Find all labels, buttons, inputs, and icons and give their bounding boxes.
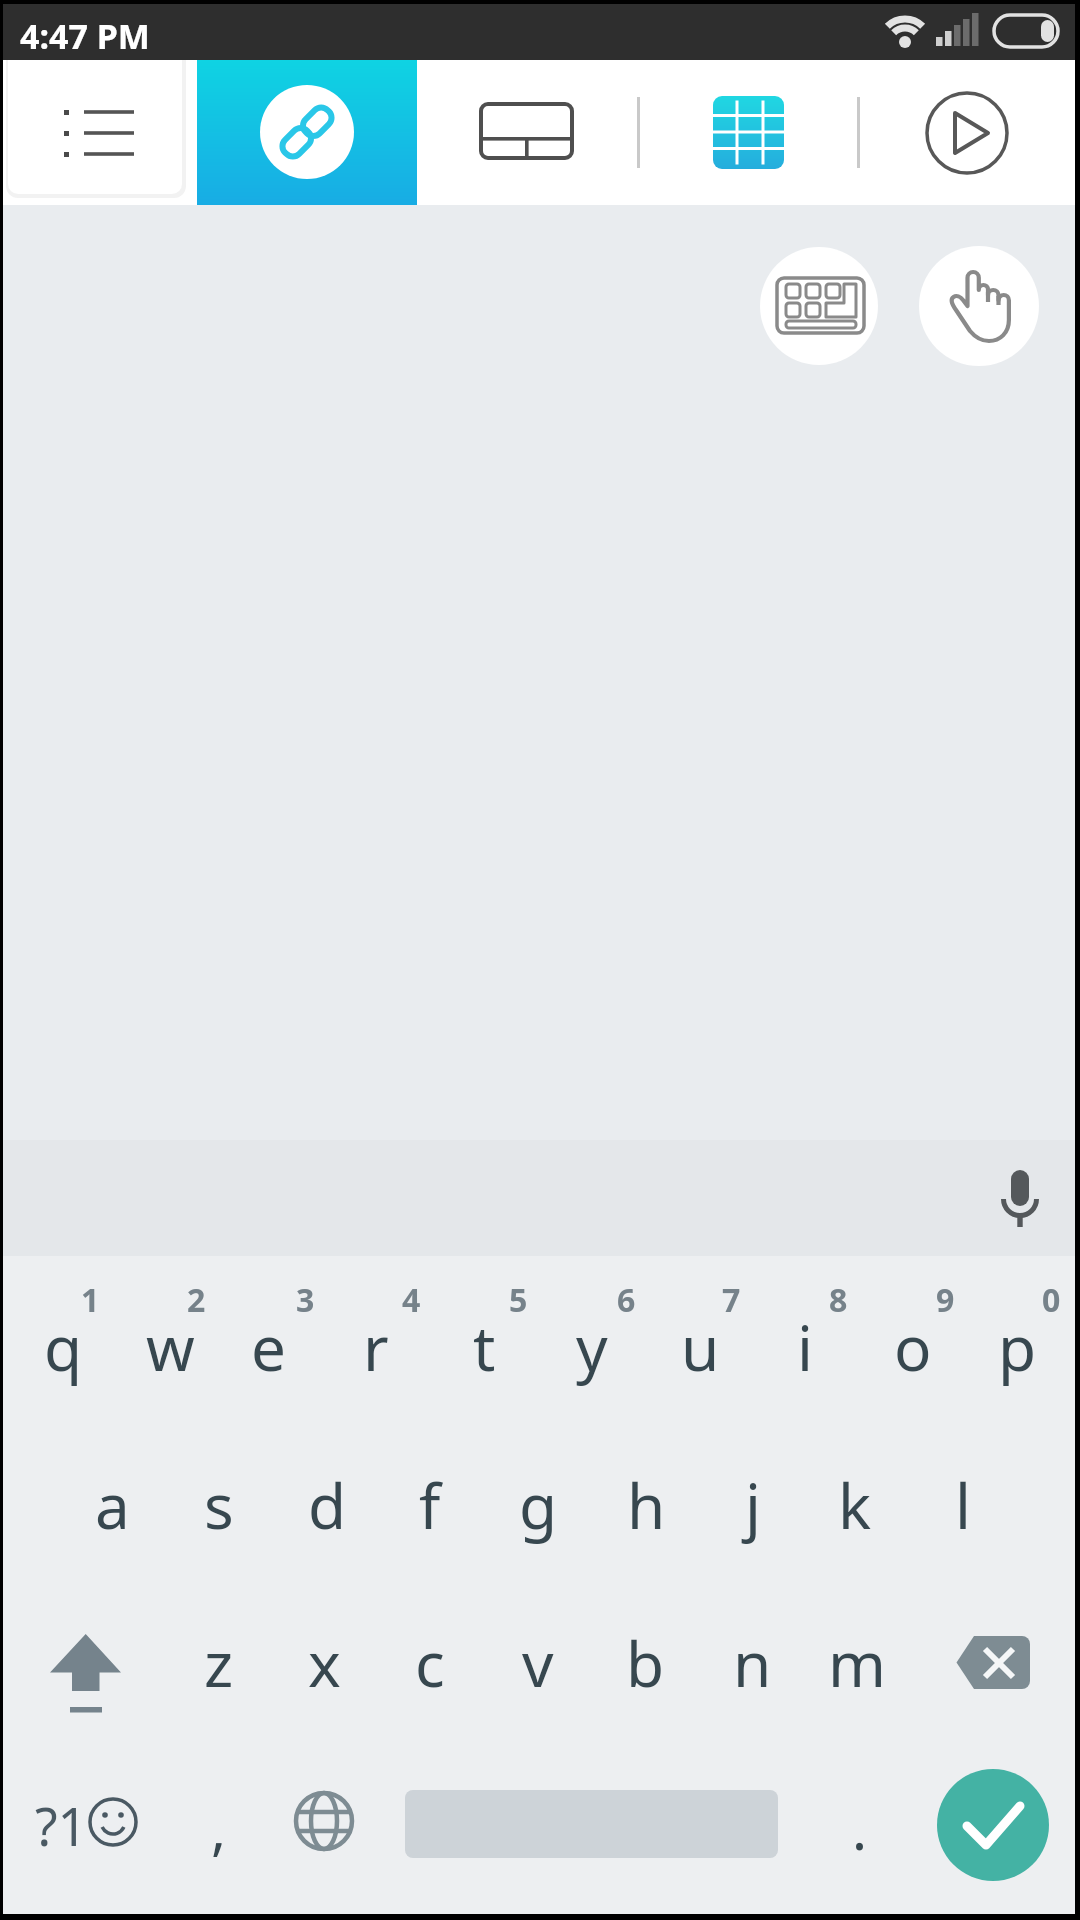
staticText: 2: [187, 1278, 206, 1322]
button[interactable]: e: [216, 1292, 320, 1402]
staticText: k: [838, 1463, 872, 1547]
button[interactable]: .: [808, 1773, 912, 1883]
staticText: 4:47 PM: [20, 13, 150, 59]
button[interactable]: ,: [167, 1773, 271, 1883]
staticText: u: [681, 1305, 720, 1389]
staticText: 4: [402, 1278, 421, 1322]
button[interactable]: j: [701, 1450, 805, 1560]
button[interactable]: [274, 1770, 374, 1880]
button[interactable]: ?1: [20, 1770, 150, 1880]
staticText: y: [576, 1305, 608, 1389]
staticText: .: [852, 1790, 868, 1866]
staticText: r: [363, 1305, 389, 1389]
button[interactable]: k: [803, 1450, 907, 1560]
staticText: 9: [936, 1278, 955, 1322]
button[interactable]: [860, 60, 1080, 205]
button[interactable]: n: [700, 1608, 804, 1718]
button[interactable]: [640, 60, 857, 205]
staticText: w: [146, 1305, 195, 1389]
button[interactable]: v: [486, 1608, 590, 1718]
button[interactable]: y: [540, 1292, 644, 1402]
staticText: s: [204, 1463, 234, 1547]
button[interactable]: [935, 1605, 1055, 1721]
button[interactable]: q: [11, 1292, 115, 1402]
staticText: p: [998, 1305, 1037, 1389]
staticText: 0: [1042, 1278, 1061, 1322]
staticText: n: [733, 1621, 772, 1705]
staticText: h: [627, 1463, 666, 1547]
button[interactable]: b: [593, 1608, 697, 1718]
button[interactable]: g: [486, 1450, 590, 1560]
button[interactable]: w: [118, 1292, 222, 1402]
staticText: ?1: [35, 1790, 88, 1861]
staticText: 6: [617, 1278, 636, 1322]
button[interactable]: s: [167, 1450, 271, 1560]
button[interactable]: [919, 246, 1039, 366]
staticText: m: [828, 1621, 886, 1705]
button[interactable]: [25, 1605, 145, 1721]
button[interactable]: h: [594, 1450, 698, 1560]
button[interactable]: [8, 60, 182, 194]
staticText: o: [894, 1305, 932, 1389]
button[interactable]: l: [911, 1450, 1015, 1560]
button[interactable]: t: [432, 1292, 536, 1402]
staticText: i: [797, 1305, 813, 1389]
staticText: e: [251, 1305, 286, 1389]
staticText: 1: [81, 1278, 100, 1322]
button[interactable]: m: [805, 1608, 909, 1718]
staticText: z: [204, 1621, 234, 1705]
button[interactable]: a: [60, 1450, 164, 1560]
staticText: d: [308, 1463, 347, 1547]
staticText: j: [745, 1463, 761, 1547]
button[interactable]: d: [275, 1450, 379, 1560]
button[interactable]: x: [272, 1608, 376, 1718]
staticText: v: [522, 1621, 554, 1705]
button[interactable]: i: [753, 1292, 857, 1402]
button[interactable]: f: [378, 1450, 482, 1560]
staticText: b: [626, 1621, 665, 1705]
button[interactable]: p: [965, 1292, 1069, 1402]
button[interactable]: [760, 247, 878, 365]
button[interactable]: [197, 60, 417, 205]
staticText: f: [419, 1463, 441, 1547]
staticText: ,: [211, 1790, 227, 1866]
staticText: q: [44, 1305, 83, 1389]
staticText: l: [955, 1463, 971, 1547]
button[interactable]: u: [648, 1292, 752, 1402]
staticText: 3: [296, 1278, 315, 1322]
button[interactable]: [0, 1140, 1080, 1256]
button[interactable]: [417, 60, 638, 205]
button[interactable]: z: [167, 1608, 271, 1718]
staticText: t: [473, 1305, 496, 1389]
button[interactable]: o: [861, 1292, 965, 1402]
button[interactable]: [985, 1160, 1055, 1240]
staticText: g: [519, 1463, 558, 1547]
staticText: x: [308, 1621, 341, 1705]
staticText: 5: [509, 1278, 528, 1322]
button[interactable]: c: [378, 1608, 482, 1718]
button[interactable]: [937, 1769, 1049, 1881]
staticText: c: [415, 1621, 445, 1705]
staticText: a: [95, 1463, 130, 1547]
staticText: 7: [722, 1278, 741, 1322]
staticText: 8: [829, 1278, 848, 1322]
button[interactable]: r: [324, 1292, 428, 1402]
